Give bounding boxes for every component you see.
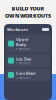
staticText: OWN WORKOUTS	[5, 12, 51, 19]
staticText: Core Blast	[16, 70, 36, 76]
staticText: Leg Day	[16, 56, 31, 61]
staticText: Workouts	[7, 27, 28, 32]
staticText: 6 exercises	[16, 61, 30, 65]
button[interactable]: Leg Day	[6, 54, 50, 67]
staticText: Upper Body	[16, 36, 29, 47]
staticText: 8 exercises	[16, 47, 30, 51]
staticText: 5 exercises	[16, 76, 30, 79]
button[interactable]: Core Blast	[6, 68, 50, 81]
button[interactable]: Upper Body	[6, 34, 50, 53]
staticText: BUILD YOUR	[11, 5, 44, 12]
